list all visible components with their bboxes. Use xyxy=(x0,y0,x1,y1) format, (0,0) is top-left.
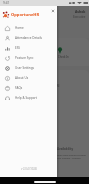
staticText: Posture Sync xyxy=(15,56,34,60)
staticText: Check In xyxy=(58,55,69,59)
staticText: Availability xyxy=(57,147,74,151)
staticText: FAQs xyxy=(15,86,23,90)
button[interactable]: Posture Sync xyxy=(0,53,57,63)
button[interactable]: FAQs xyxy=(0,83,57,93)
staticText: Help & Support xyxy=(15,96,37,100)
staticText: ESS xyxy=(15,46,21,50)
button[interactable]: Home xyxy=(0,23,57,33)
staticText: About Us xyxy=(15,76,29,80)
staticText: Home xyxy=(15,26,24,30)
button[interactable]: Attendance Details xyxy=(0,33,57,43)
button[interactable]: User Settings xyxy=(0,63,57,73)
staticText: Mon-Wed 9:00am-6:00pm Thu 9:00am - 6:00p… xyxy=(57,153,87,160)
staticText: Executive xyxy=(73,15,86,19)
button[interactable]: Help & Support xyxy=(0,93,57,103)
staticText: v 2.0.4 (1024) xyxy=(21,167,37,171)
staticText: OpportuneHR xyxy=(11,12,40,18)
button[interactable]: Close xyxy=(50,8,56,14)
staticText: User Settings xyxy=(15,66,35,70)
staticText: 9:41 xyxy=(3,1,10,5)
button[interactable]: ESS xyxy=(0,43,57,53)
staticText: Ashok xyxy=(75,9,86,14)
staticText: M xyxy=(57,84,60,88)
staticText: Attendance Details xyxy=(15,36,42,40)
button[interactable]: About Us xyxy=(0,73,57,83)
